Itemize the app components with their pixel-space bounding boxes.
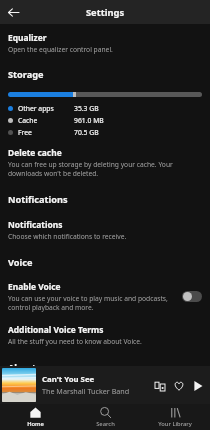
button[interactable]: Enable Voice <box>182 291 202 302</box>
staticText: Notifications <box>8 193 68 206</box>
staticText: Cache <box>18 116 38 125</box>
button[interactable]: Your Library <box>140 404 210 430</box>
button[interactable]: Search <box>70 404 140 430</box>
staticText: Search <box>96 420 115 428</box>
button[interactable]: Save to your library <box>169 376 188 395</box>
staticText: 70.5 GB <box>74 128 99 137</box>
button[interactable]: Play <box>188 376 207 395</box>
staticText: Choose which notifications to receive. <box>8 232 127 241</box>
staticText: Additional Voice Terms <box>8 324 104 335</box>
button[interactable]: Notifications <box>8 219 202 241</box>
staticText: You can free up storage by deleting your… <box>8 160 173 178</box>
staticText: All the stuff you need to know about Voi… <box>8 337 142 346</box>
staticText: Enable Voice <box>8 281 61 292</box>
button[interactable]: Delete cache <box>8 147 202 178</box>
button[interactable]: Can't You See <box>0 366 210 404</box>
staticText: Delete cache <box>8 147 62 158</box>
staticText: 961.0 MB <box>74 116 104 125</box>
staticText: Your Library <box>158 420 192 428</box>
staticText: About <box>8 361 36 366</box>
button[interactable]: Home <box>0 404 70 430</box>
staticText: Other apps <box>18 104 54 113</box>
staticText: Equalizer <box>8 32 47 43</box>
button[interactable]: Back <box>3 2 23 22</box>
staticText: Home <box>27 420 44 428</box>
staticText: Open the equalizer control panel. <box>8 45 113 54</box>
button[interactable]: Equalizer <box>8 32 202 54</box>
button[interactable]: Connect to a device <box>150 376 169 395</box>
staticText: 35.3 GB <box>74 104 99 113</box>
button[interactable]: Additional Voice Terms <box>8 324 202 346</box>
staticText: Voice <box>8 256 33 269</box>
button[interactable]: Enable Voice <box>8 281 202 312</box>
staticText: Notifications <box>8 219 63 230</box>
staticText: You can use your voice to play music and… <box>8 294 168 312</box>
staticText: Free <box>18 128 32 137</box>
staticText: Settings <box>86 6 125 19</box>
staticText: Can't You See <box>42 374 95 385</box>
staticText: Storage <box>8 68 44 81</box>
staticText: The Marshall Tucker Band <box>42 386 130 396</box>
